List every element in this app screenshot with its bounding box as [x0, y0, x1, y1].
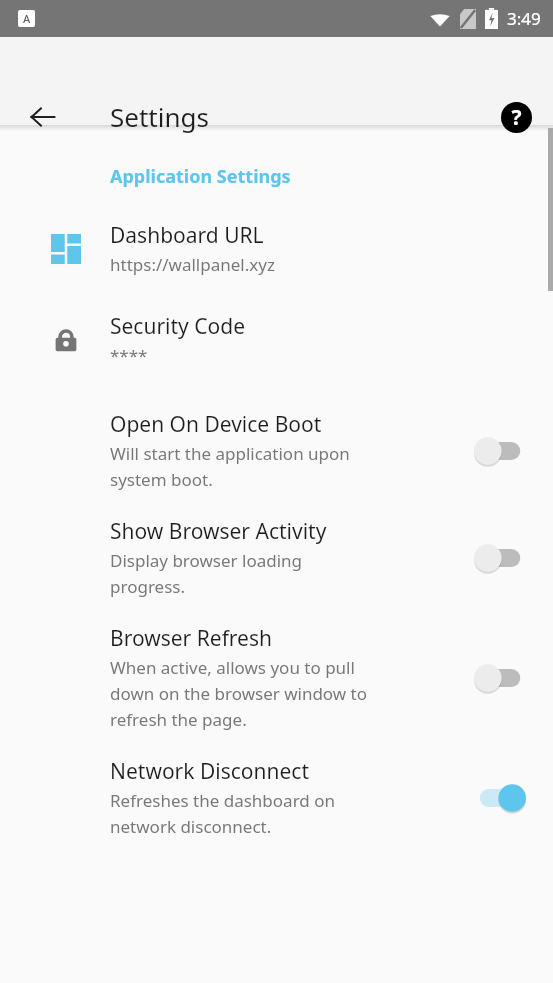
staticText: Security Code — [110, 312, 246, 341]
button[interactable]: Help — [492, 93, 540, 141]
staticText: Display browser loading progress. — [110, 549, 303, 598]
button[interactable]: Security Code — [0, 312, 553, 367]
staticText: When active, allows you to pull down on … — [110, 656, 368, 731]
staticText: Will start the application upon system b… — [110, 442, 350, 491]
staticText: Settings — [110, 99, 209, 134]
staticText: Show Browser Activity — [110, 517, 327, 546]
staticText: Browser Refresh — [110, 624, 272, 653]
staticText: Refreshes the dashboard on network disco… — [110, 789, 335, 838]
staticText: Open On Device Boot — [110, 410, 322, 439]
staticText: ? — [511, 103, 522, 132]
staticText: Network Disconnect — [110, 757, 309, 786]
staticText: **** — [110, 344, 148, 367]
button[interactable]: Network Disconnect — [0, 757, 553, 838]
button[interactable]: Browser Refresh — [0, 624, 553, 731]
button[interactable]: Open On Device Boot — [469, 427, 531, 475]
button[interactable]: Back — [19, 93, 67, 141]
staticText: Application Settings — [110, 164, 291, 189]
button[interactable]: Open On Device Boot — [0, 410, 553, 491]
button[interactable]: Browser Refresh — [469, 654, 531, 702]
button[interactable]: Show Browser Activity — [469, 534, 531, 582]
staticText: Dashboard URL — [110, 221, 264, 250]
staticText: 3:49 — [507, 7, 541, 30]
staticText: https://wallpanel.xyz — [110, 253, 275, 276]
button[interactable]: Network Disconnect — [469, 774, 531, 822]
button[interactable]: Show Browser Activity — [0, 517, 553, 598]
button[interactable]: Dashboard URL — [0, 221, 553, 276]
staticText: A — [23, 11, 31, 26]
